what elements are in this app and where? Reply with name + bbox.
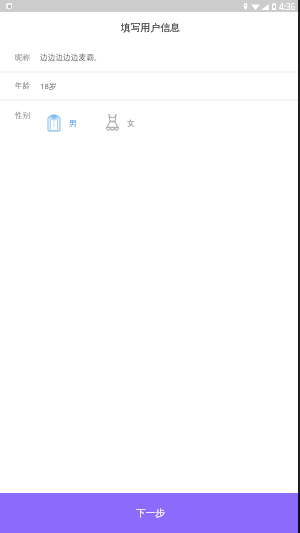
other: Female xyxy=(106,113,119,131)
staticText: 18岁 xyxy=(40,81,57,92)
button[interactable]: 昵称 xyxy=(0,44,300,71)
staticText: 边边边边边麦霸。 xyxy=(40,53,102,63)
button[interactable]: Male xyxy=(47,114,77,132)
staticText: 性别 xyxy=(15,111,31,121)
button[interactable]: 下一步 xyxy=(0,493,300,533)
other: Male xyxy=(47,114,61,132)
staticText: 4:36 xyxy=(279,1,296,12)
staticText: 女 xyxy=(127,118,135,128)
button[interactable]: Female xyxy=(106,114,135,132)
staticText: 下一步 xyxy=(136,507,165,519)
staticText: 填写用户信息 xyxy=(121,22,180,34)
staticText: 昵称 xyxy=(15,53,31,63)
staticText: 填写用户信息 xyxy=(121,22,180,34)
staticText: 男 xyxy=(69,118,77,128)
staticText: 年龄 xyxy=(15,81,31,91)
button[interactable]: 年龄 xyxy=(0,73,300,99)
